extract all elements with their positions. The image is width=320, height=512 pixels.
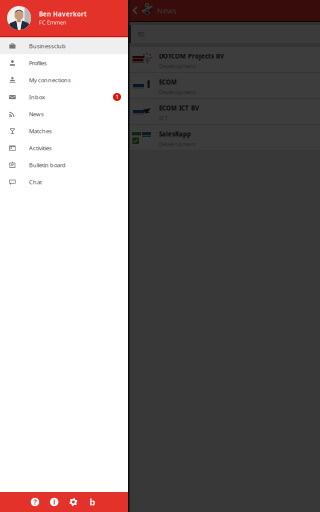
staticText: Development — [159, 140, 196, 148]
staticText: Chat — [29, 178, 42, 186]
staticText: Profiles — [29, 59, 47, 67]
staticText: FC Emmen — [39, 18, 66, 26]
staticText: DOTCOM Projects BV — [159, 52, 224, 60]
staticText: SalesRapp — [159, 130, 191, 138]
staticText: Development — [159, 62, 196, 70]
button[interactable]: News — [0, 105, 128, 122]
staticText: My connections — [29, 76, 71, 84]
button[interactable]: Businessclub — [0, 37, 128, 54]
staticText: Matches — [29, 127, 52, 135]
button[interactable]: Profiles — [0, 54, 128, 71]
staticText: ECOM ICT BV — [159, 104, 199, 112]
button[interactable]: Businessclub home — [88, 497, 98, 507]
staticText: ? — [33, 497, 36, 506]
staticText: News — [157, 5, 177, 16]
staticText: ICT — [159, 114, 168, 122]
button[interactable]: SalesRapp — [128, 125, 320, 151]
button[interactable]: Settings — [68, 497, 78, 507]
staticText: 1 — [115, 93, 118, 100]
button[interactable]: Help — [30, 497, 40, 507]
staticText: Bulletin board — [29, 161, 66, 169]
button[interactable]: Activities — [0, 139, 128, 156]
staticText: Development — [159, 88, 196, 96]
button[interactable]: Inbox — [0, 88, 128, 105]
button[interactable]: Chat — [0, 173, 128, 190]
staticText: Inbox — [29, 93, 45, 101]
button[interactable]: DOTCOM Projects BV — [128, 47, 320, 73]
staticText: Businessclub — [29, 42, 66, 50]
staticText: b — [90, 496, 96, 508]
button[interactable]: About — [49, 497, 59, 507]
button[interactable]: Bulletin board — [0, 156, 128, 173]
button[interactable]: Matches — [0, 122, 128, 139]
staticText: Activities — [29, 144, 52, 152]
staticText: Ben Haverkort — [39, 10, 87, 18]
staticText: News — [29, 110, 44, 118]
staticText: ECOM — [159, 78, 177, 86]
button[interactable]: Back — [128, 0, 140, 21]
button[interactable]: ECOM ICT BV — [128, 99, 320, 125]
button[interactable]: My connections — [0, 71, 128, 88]
button[interactable]: ECOM — [128, 73, 320, 99]
staticText: EC — [138, 30, 145, 38]
staticText: i — [53, 497, 55, 506]
